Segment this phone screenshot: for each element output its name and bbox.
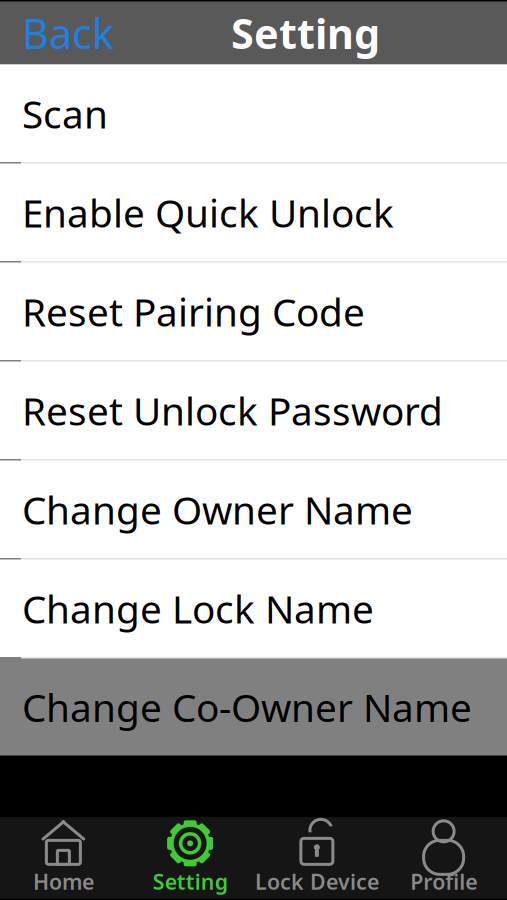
staticText: Enable Quick Unlock: [22, 187, 394, 238]
button[interactable]: Profile: [380, 817, 507, 898]
staticText: Change Owner Name: [22, 484, 413, 535]
staticText: Setting: [231, 6, 380, 60]
staticText: Change Lock Name: [22, 583, 374, 634]
button[interactable]: Back: [0, 0, 114, 68]
staticText: Reset Pairing Code: [22, 286, 365, 337]
staticText: Scan: [22, 88, 108, 139]
button[interactable]: Change Owner Name: [0, 460, 507, 559]
staticText: Setting: [153, 867, 228, 896]
staticText: Change Co-Owner Name: [22, 681, 472, 733]
button[interactable]: Change Co-Owner Name: [0, 658, 507, 755]
staticText: Lock Device: [255, 867, 379, 896]
button[interactable]: Enable Quick Unlock: [0, 163, 507, 262]
button[interactable]: Setting: [127, 817, 254, 898]
button[interactable]: Home: [0, 817, 127, 898]
button[interactable]: Reset Pairing Code: [0, 262, 507, 361]
staticText: Home: [33, 867, 94, 896]
staticText: Reset Unlock Password: [22, 385, 443, 436]
staticText: Profile: [410, 867, 477, 896]
staticText: Back: [22, 6, 114, 60]
button[interactable]: Scan: [0, 64, 507, 163]
button[interactable]: Reset Unlock Password: [0, 361, 507, 460]
button[interactable]: Lock Device: [253, 817, 380, 898]
button[interactable]: Change Lock Name: [0, 559, 507, 658]
